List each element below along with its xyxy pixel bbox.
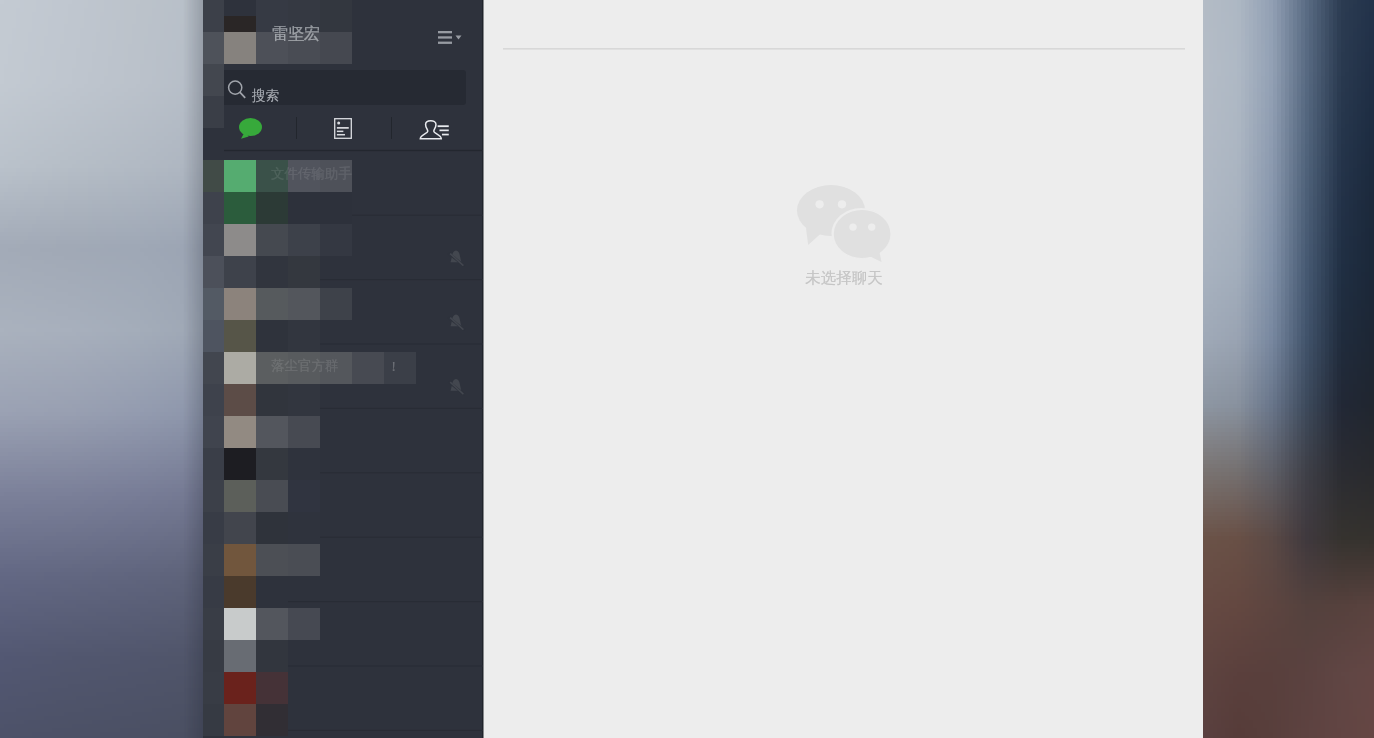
staticText: 未选择聊天 bbox=[805, 268, 883, 288]
button[interactable]: Chat 2 bbox=[203, 214, 483, 278]
button[interactable]: Chat 10 bbox=[203, 726, 483, 738]
button[interactable]: Chats bbox=[203, 106, 296, 149]
button[interactable]: Menu bbox=[431, 20, 467, 54]
staticText: ! bbox=[392, 358, 396, 374]
button[interactable]: Contacts bbox=[392, 106, 483, 149]
button[interactable]: 搜索 bbox=[222, 70, 466, 105]
button[interactable]: Chat 5 bbox=[203, 406, 483, 470]
button[interactable]: Chat 3 bbox=[203, 278, 483, 342]
button[interactable]: Chat 9 bbox=[203, 662, 483, 726]
button[interactable]: Profile bbox=[223, 15, 262, 54]
staticText: 雷坚宏 bbox=[272, 24, 320, 44]
button[interactable]: Chat 8 bbox=[203, 598, 483, 662]
button[interactable]: Moments bbox=[297, 106, 391, 149]
staticText: 搜索 bbox=[252, 87, 279, 104]
button[interactable]: Chat 7 bbox=[203, 534, 483, 598]
button[interactable]: Chat 4 bbox=[203, 342, 483, 406]
button[interactable]: Chat 6 bbox=[203, 470, 483, 534]
button[interactable]: Chat 1 bbox=[203, 150, 483, 214]
staticText: 落尘官方群 bbox=[271, 357, 339, 374]
staticText: 文件传输助手 bbox=[271, 165, 352, 182]
